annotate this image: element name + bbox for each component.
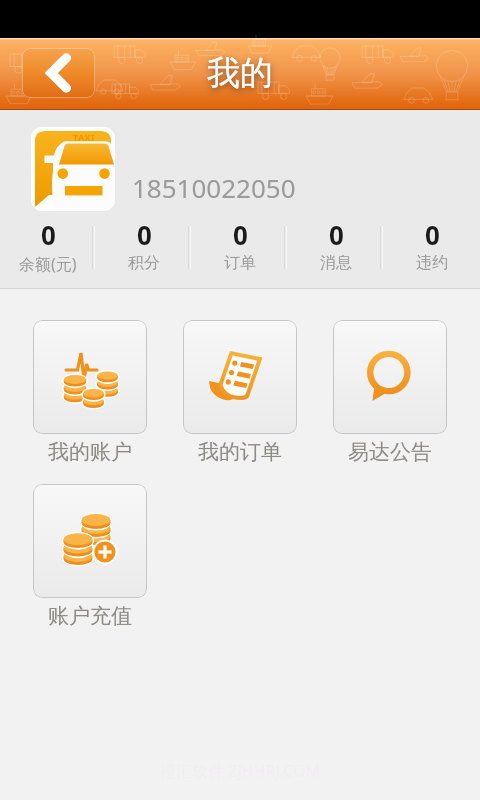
button[interactable]: 0 [384, 217, 480, 279]
button[interactable]: 0 [288, 217, 384, 279]
button[interactable]: 0 [192, 217, 288, 279]
staticText: 消息 [320, 253, 352, 273]
button[interactable]: 我的账户 [33, 320, 147, 465]
staticText: 我的订单 [198, 439, 282, 465]
button[interactable]: Avatar [31, 127, 115, 211]
staticText: 0 [233, 217, 248, 252]
staticText: 0 [425, 217, 440, 252]
button[interactable]: Back [22, 48, 95, 98]
staticText: 0 [329, 217, 344, 252]
staticText: 18510022050 [132, 170, 296, 205]
staticText: 0 [137, 217, 152, 252]
button[interactable]: 我的订单 [183, 320, 297, 465]
button[interactable]: 0 [0, 217, 96, 279]
staticText: 易达公告 [348, 439, 432, 465]
staticText: 账户充值 [48, 603, 132, 629]
staticText: 我的 [207, 52, 273, 94]
staticText: TAXI [73, 131, 95, 143]
staticText: 违约 [416, 253, 448, 273]
button[interactable]: 账户充值 [33, 484, 147, 629]
button[interactable]: 易达公告 [333, 320, 447, 465]
staticText: 我的账户 [48, 439, 132, 465]
staticText: 余额(元) [19, 253, 77, 275]
staticText: 订单 [224, 253, 256, 273]
button[interactable]: 0 [96, 217, 192, 279]
staticText: 积分 [128, 253, 160, 273]
staticText: 0 [41, 217, 56, 252]
